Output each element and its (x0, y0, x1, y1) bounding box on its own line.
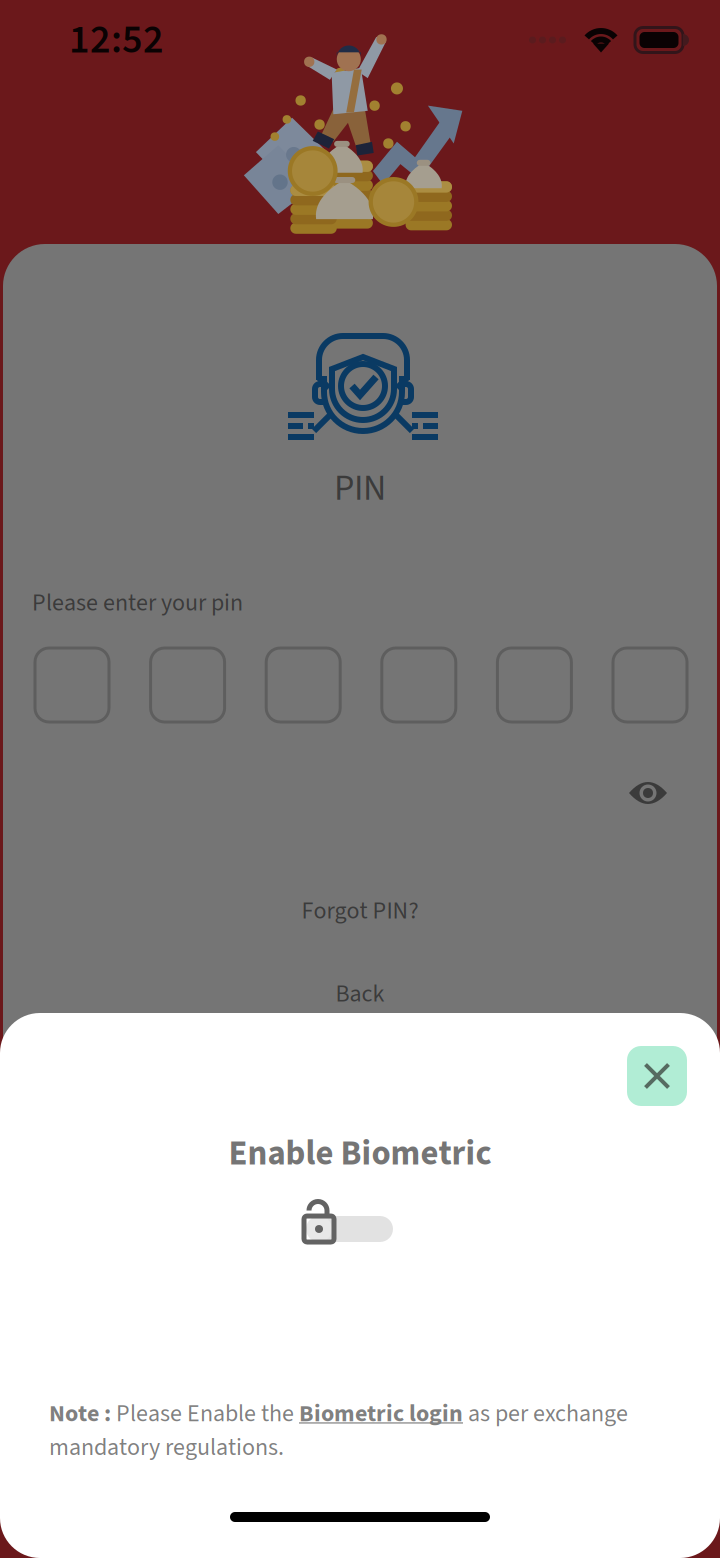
button[interactable]: Show PIN (617, 768, 679, 818)
staticText: Enable Biometric (228, 1129, 491, 1178)
button[interactable]: Forgot PIN? (3, 889, 717, 933)
staticText: Back (335, 977, 384, 1011)
button[interactable]: Close (627, 1046, 687, 1106)
staticText: mandatory regulations. (49, 1430, 284, 1464)
staticText: Forgot PIN? (301, 894, 418, 928)
button[interactable]: Back (3, 972, 717, 1016)
staticText: Note : Please Enable the Biometric login… (49, 1397, 628, 1430)
staticText: Please enter your pin (32, 586, 243, 620)
staticText: PIN (334, 463, 386, 514)
staticText: 12:52 (69, 11, 164, 68)
button[interactable]: Enable biometric login (304, 1202, 404, 1252)
